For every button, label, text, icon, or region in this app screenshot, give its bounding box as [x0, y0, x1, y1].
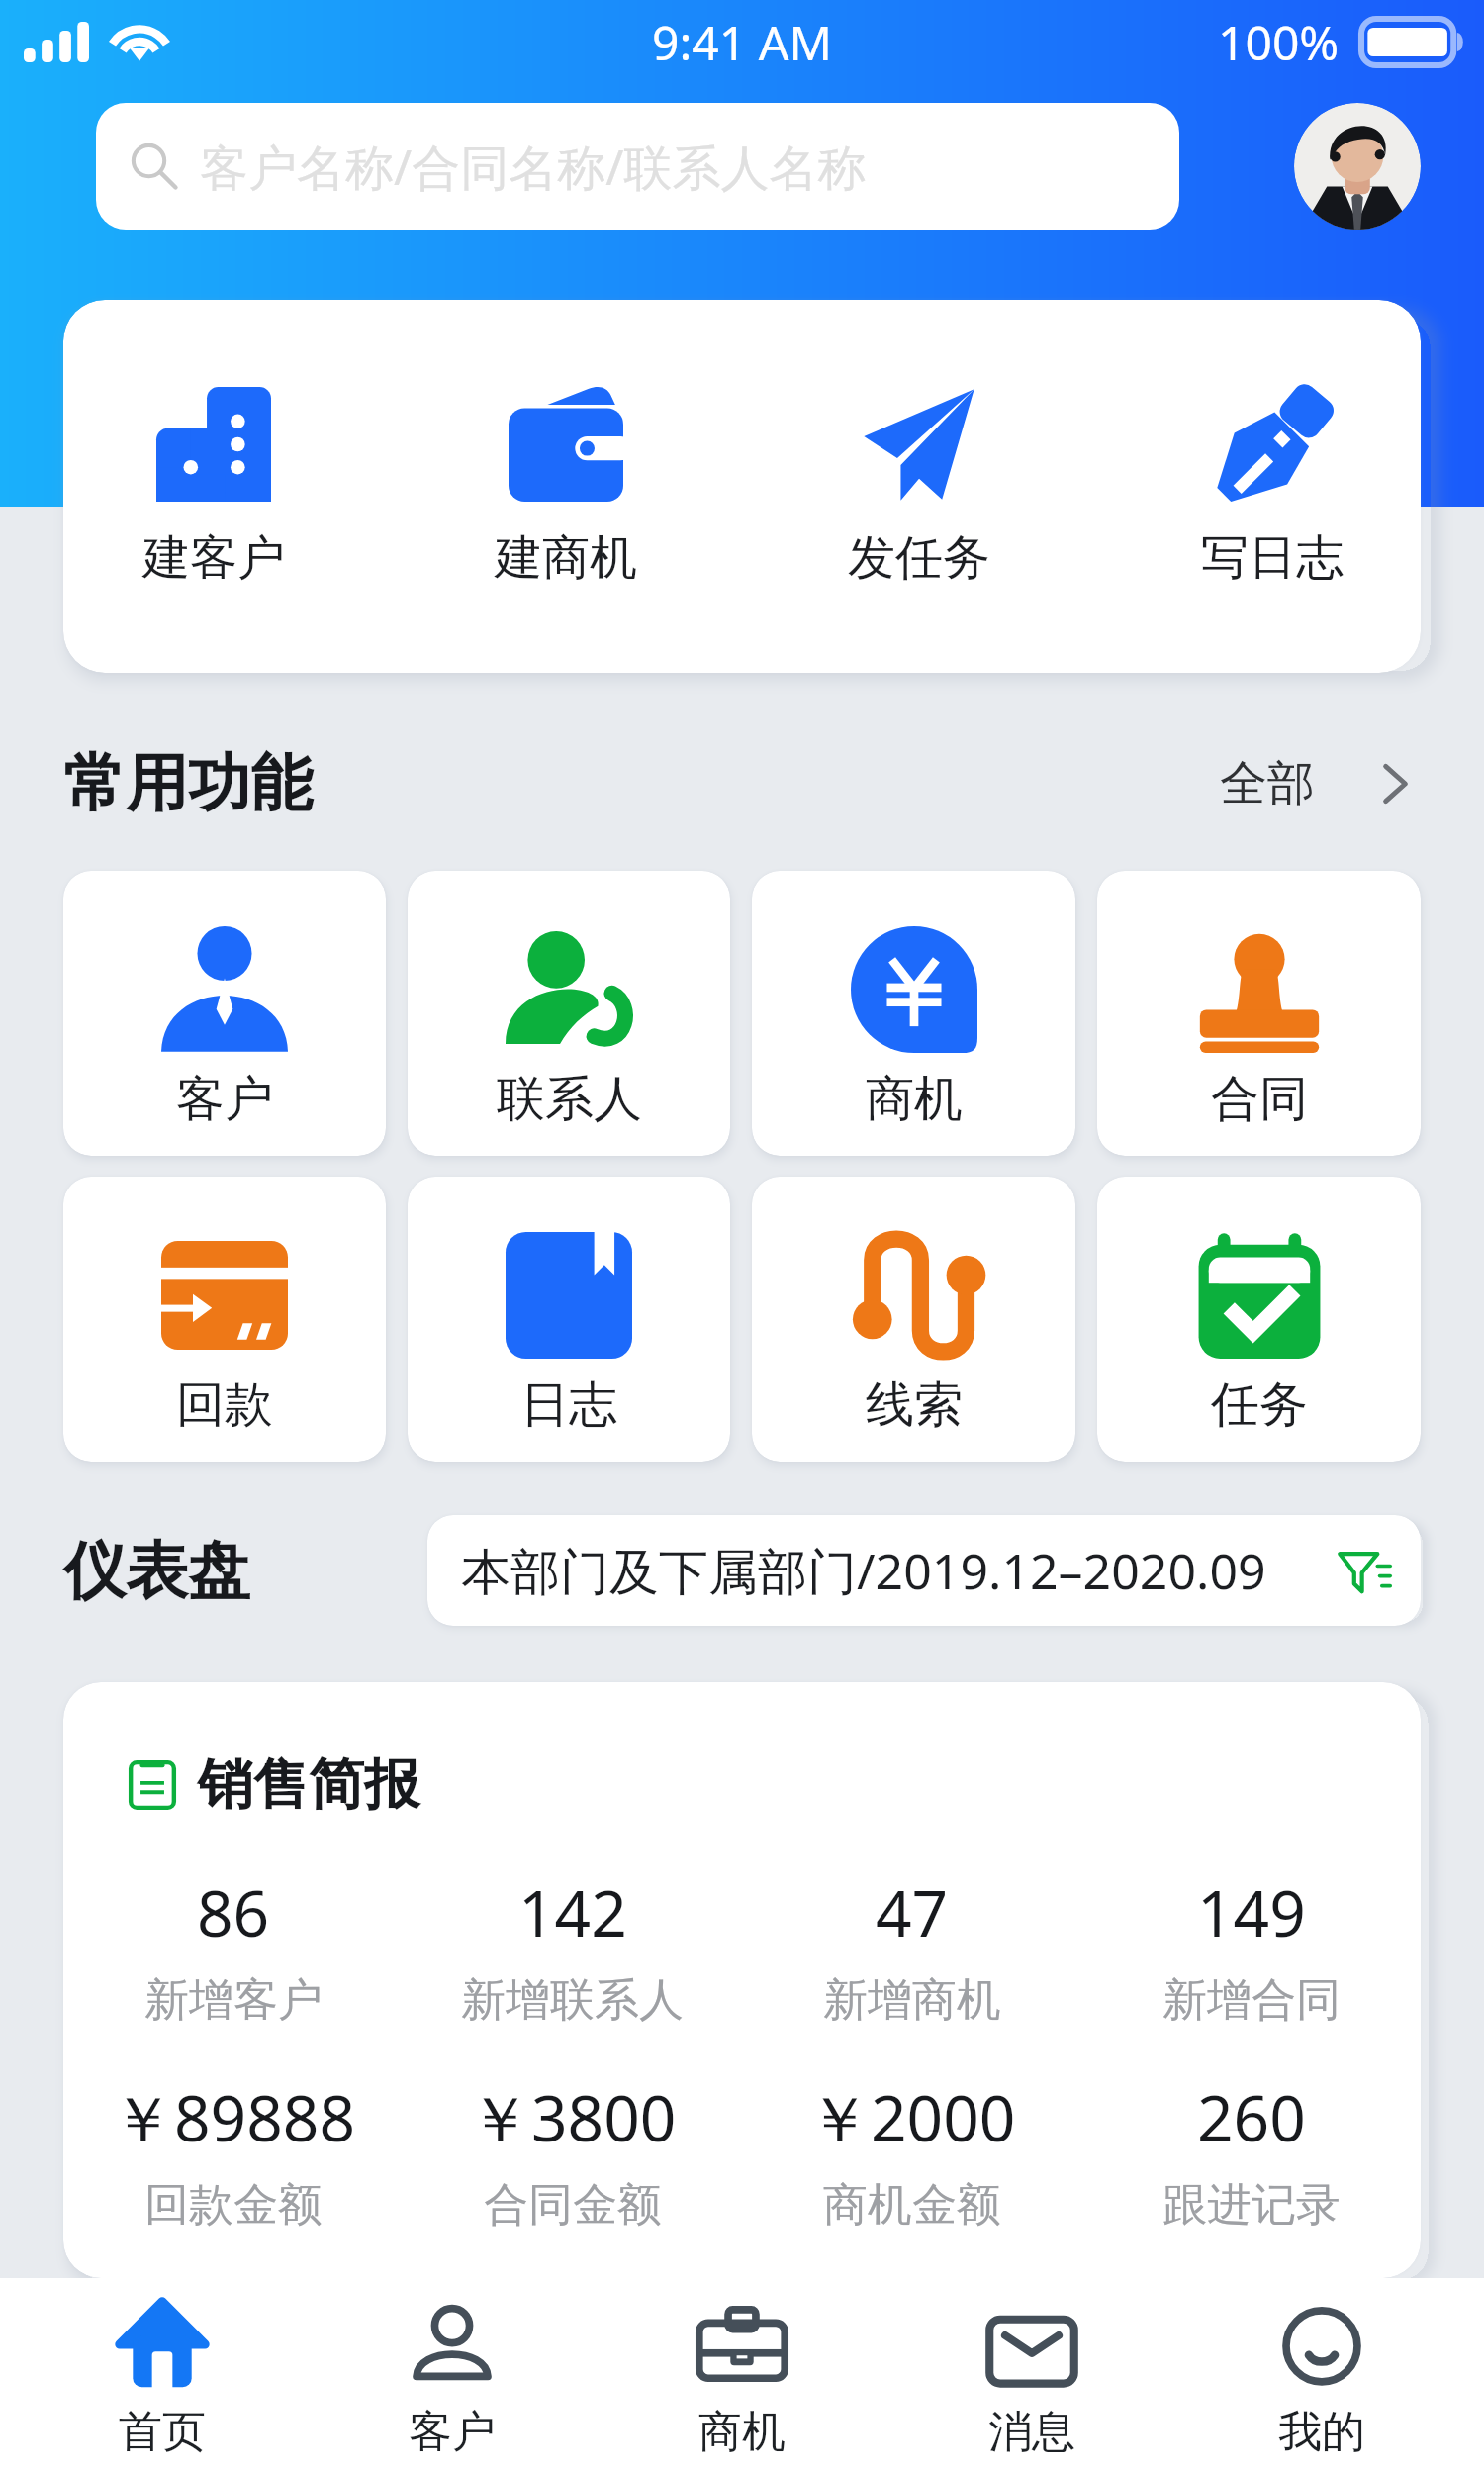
staticText: 首页 — [119, 2405, 206, 2459]
button[interactable]: 我的 — [1176, 2278, 1466, 2474]
staticText: 我的 — [1278, 2405, 1365, 2459]
button[interactable]: 联系人 — [408, 871, 730, 1156]
staticText: 新增联系人 — [461, 1972, 684, 2029]
button[interactable]: 客户 — [307, 2278, 597, 2474]
button[interactable]: 商机 — [597, 2278, 886, 2474]
staticText: 合同金额 — [484, 2177, 662, 2234]
staticText: 260 — [1197, 2074, 1306, 2160]
button[interactable]: 首页 — [17, 2278, 307, 2474]
button[interactable]: 回款 — [63, 1177, 386, 1462]
button[interactable]: 建客户 — [63, 300, 390, 673]
staticText: ￥3800 — [468, 2074, 677, 2160]
staticText: ￥89888 — [111, 2074, 356, 2160]
staticText: 线索 — [866, 1375, 963, 1436]
staticText: 写日志 — [1201, 528, 1344, 588]
button[interactable]: 商机 — [752, 871, 1075, 1156]
button[interactable]: 日志 — [408, 1177, 730, 1462]
staticText: 新增客户 — [144, 1972, 323, 2029]
button[interactable]: 任务 — [1097, 1177, 1421, 1462]
staticText: 客户 — [409, 2405, 496, 2459]
button[interactable]: 客户 — [63, 871, 386, 1156]
staticText: 全部 — [1220, 754, 1315, 813]
staticText: 仪表盘 — [63, 1532, 250, 1610]
staticText: 47 — [876, 1869, 949, 1955]
staticText: 建商机 — [495, 528, 637, 588]
staticText: 客户 — [176, 1069, 273, 1130]
staticText: 86 — [197, 1869, 270, 1955]
staticText: 新增商机 — [823, 1972, 1001, 2029]
staticText: 任务 — [1211, 1375, 1308, 1436]
staticText: 联系人 — [497, 1069, 642, 1130]
button[interactable]: 全部 — [1220, 748, 1421, 819]
staticText: 142 — [518, 1869, 627, 1955]
staticText: 消息 — [988, 2405, 1075, 2459]
staticText: 9:41 AM — [652, 10, 832, 74]
staticText: 客户名称/合同名称/联系人名称 — [200, 134, 867, 200]
staticText: 建客户 — [142, 528, 285, 588]
staticText: ￥2000 — [807, 2074, 1016, 2160]
button[interactable]: Profile — [1294, 103, 1421, 230]
staticText: 商机金额 — [823, 2177, 1001, 2234]
staticText: 常用功能 — [63, 744, 313, 822]
staticText: 149 — [1197, 1869, 1306, 1955]
button[interactable]: 建商机 — [390, 300, 742, 673]
staticText: 合同 — [1211, 1069, 1308, 1130]
button[interactable]: 客户名称/合同名称/联系人名称 — [96, 103, 1179, 230]
staticText: 跟进记录 — [1162, 2177, 1341, 2234]
button[interactable]: 本部门及下属部门/2019.12–2020.09 — [427, 1515, 1421, 1626]
button[interactable]: 线索 — [752, 1177, 1075, 1462]
staticText: 日志 — [520, 1375, 617, 1436]
button[interactable]: 发任务 — [742, 300, 1095, 673]
staticText: 商机 — [698, 2405, 786, 2459]
staticText: 回款 — [176, 1375, 273, 1436]
button[interactable]: 消息 — [886, 2278, 1176, 2474]
staticText: 新增合同 — [1162, 1972, 1341, 2029]
button[interactable]: 写日志 — [1095, 300, 1421, 673]
staticText: 回款金额 — [144, 2177, 323, 2234]
button[interactable]: 合同 — [1097, 871, 1421, 1156]
staticText: 100% — [1218, 10, 1340, 74]
staticText: 发任务 — [848, 528, 990, 588]
staticText: 销售简报 — [198, 1750, 419, 1820]
staticText: 本部门及下属部门/2019.12–2020.09 — [461, 1537, 1266, 1604]
staticText: 商机 — [866, 1069, 963, 1130]
